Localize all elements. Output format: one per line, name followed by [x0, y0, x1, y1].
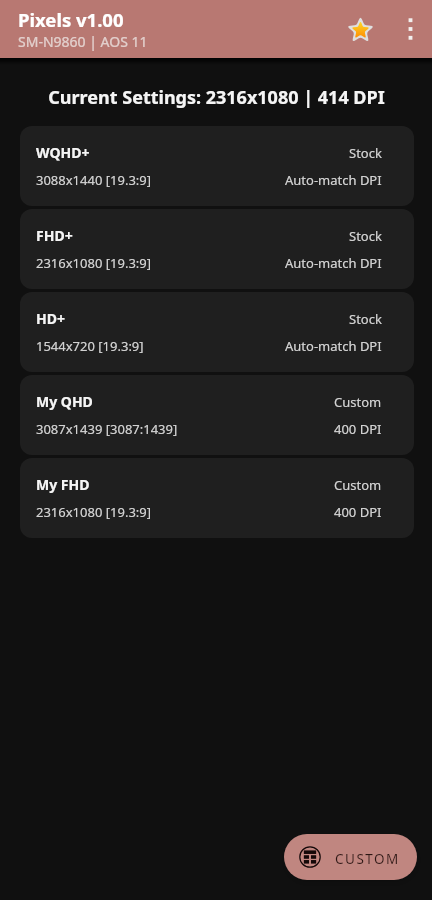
staticText: 3088x1440 [19.3:9]: [36, 171, 285, 189]
button[interactable]: HD+: [20, 292, 414, 372]
button[interactable]: More options: [384, 8, 426, 50]
staticText: 3087x1439 [3087:1439]: [36, 420, 334, 438]
staticText: Stock: [349, 144, 382, 162]
staticText: SM-N9860 | AOS 11: [18, 32, 148, 51]
button[interactable]: WQHD+: [20, 126, 414, 206]
staticText: 400 DPI: [334, 503, 382, 521]
button[interactable]: My FHD: [20, 458, 414, 538]
button[interactable]: FHD+: [20, 209, 414, 289]
staticText: FHD+: [36, 226, 349, 245]
button[interactable]: My QHD: [20, 375, 414, 455]
staticText: Custom: [334, 393, 382, 411]
staticText: 2316x1080 [19.3:9]: [36, 254, 285, 272]
staticText: 1544x720 [19.3:9]: [36, 337, 285, 355]
staticText: Stock: [349, 310, 382, 328]
staticText: Stock: [349, 227, 382, 245]
staticText: 400 DPI: [334, 420, 382, 438]
button[interactable]: CUSTOM: [284, 834, 417, 880]
staticText: 2316x1080 [19.3:9]: [36, 503, 334, 521]
staticText: Custom: [334, 476, 382, 494]
staticText: CUSTOM: [335, 850, 400, 868]
staticText: My QHD: [36, 392, 334, 411]
staticText: Auto-match DPI: [285, 337, 382, 355]
staticText: Current Settings: 2316x1080 | 414 DPI: [48, 85, 385, 110]
button[interactable]: Favorite: [336, 5, 384, 53]
staticText: HD+: [36, 309, 349, 328]
staticText: Auto-match DPI: [285, 171, 382, 189]
staticText: WQHD+: [36, 143, 349, 162]
staticText: Auto-match DPI: [285, 254, 382, 272]
staticText: My FHD: [36, 475, 334, 494]
staticText: Pixels v1.00: [18, 7, 124, 32]
